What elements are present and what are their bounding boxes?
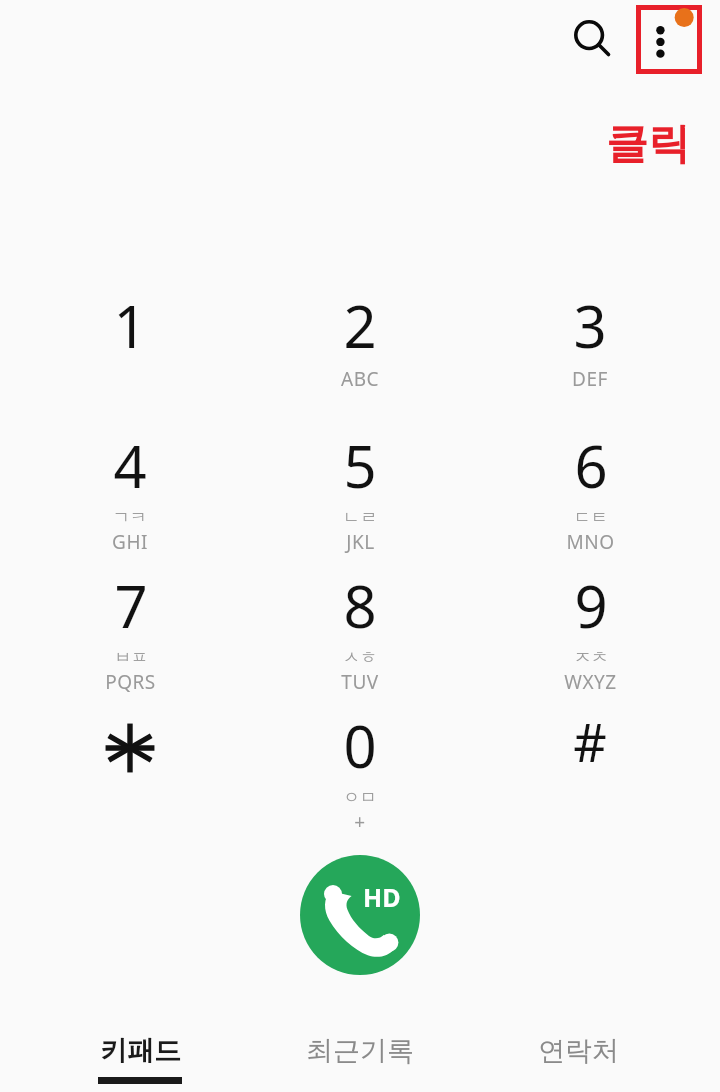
staticText: 8 xyxy=(343,566,377,645)
staticText: 9 xyxy=(574,566,608,645)
button[interactable]: Call xyxy=(300,855,420,975)
staticText: ㅅㅎ xyxy=(343,647,377,668)
staticText: TUV xyxy=(341,669,379,695)
staticText: 연락처 xyxy=(538,1034,619,1068)
staticText: 키패드 xyxy=(100,1034,181,1068)
button[interactable]: Search xyxy=(562,8,622,68)
button[interactable]: Star xyxy=(30,706,230,846)
button[interactable]: More options xyxy=(636,5,702,74)
button[interactable]: 연락처 xyxy=(478,1034,678,1092)
staticText: ㄱㅋ xyxy=(113,507,147,528)
button[interactable]: 8 xyxy=(260,566,460,706)
staticText: 3 xyxy=(573,286,607,365)
button[interactable]: 6 xyxy=(490,426,690,566)
staticText: 5 xyxy=(343,426,377,505)
staticText: 7 xyxy=(114,566,148,645)
staticText: GHI xyxy=(112,529,148,555)
staticText: 6 xyxy=(574,426,608,505)
staticText: ㄴㄹ xyxy=(343,507,377,528)
staticText: MNO xyxy=(566,529,615,555)
button[interactable]: # xyxy=(490,706,690,846)
staticText: 최근기록 xyxy=(306,1034,414,1068)
button[interactable]: 3 xyxy=(490,286,690,426)
staticText: 4 xyxy=(113,426,147,505)
button[interactable]: 5 xyxy=(260,426,460,566)
staticText: ㅇㅁ xyxy=(343,787,377,808)
staticText: ㅈㅊ xyxy=(574,647,608,668)
button[interactable]: 7 xyxy=(30,566,230,706)
staticText: # xyxy=(573,706,607,777)
button[interactable]: 최근기록 xyxy=(260,1034,460,1092)
staticText: ㅂㅍ xyxy=(114,647,148,668)
staticText: 2 xyxy=(343,286,377,365)
button[interactable]: 9 xyxy=(490,566,690,706)
staticText: ㄷㅌ xyxy=(574,507,608,528)
staticText: 1 xyxy=(113,286,147,365)
staticText: DEF xyxy=(572,366,608,392)
staticText: WXYZ xyxy=(564,669,617,695)
staticText: + xyxy=(354,809,366,835)
staticText: HD xyxy=(363,880,401,914)
staticText: 클릭 xyxy=(606,118,690,171)
button[interactable]: 1 xyxy=(30,286,230,426)
staticText: PQRS xyxy=(105,669,156,695)
staticText: JKL xyxy=(346,529,375,555)
staticText: ABC xyxy=(341,366,379,392)
button[interactable]: 4 xyxy=(30,426,230,566)
staticText: 0 xyxy=(343,706,377,785)
button[interactable]: 0 xyxy=(260,706,460,846)
button[interactable]: 키패드 xyxy=(40,1034,240,1092)
button[interactable]: 2 xyxy=(260,286,460,426)
